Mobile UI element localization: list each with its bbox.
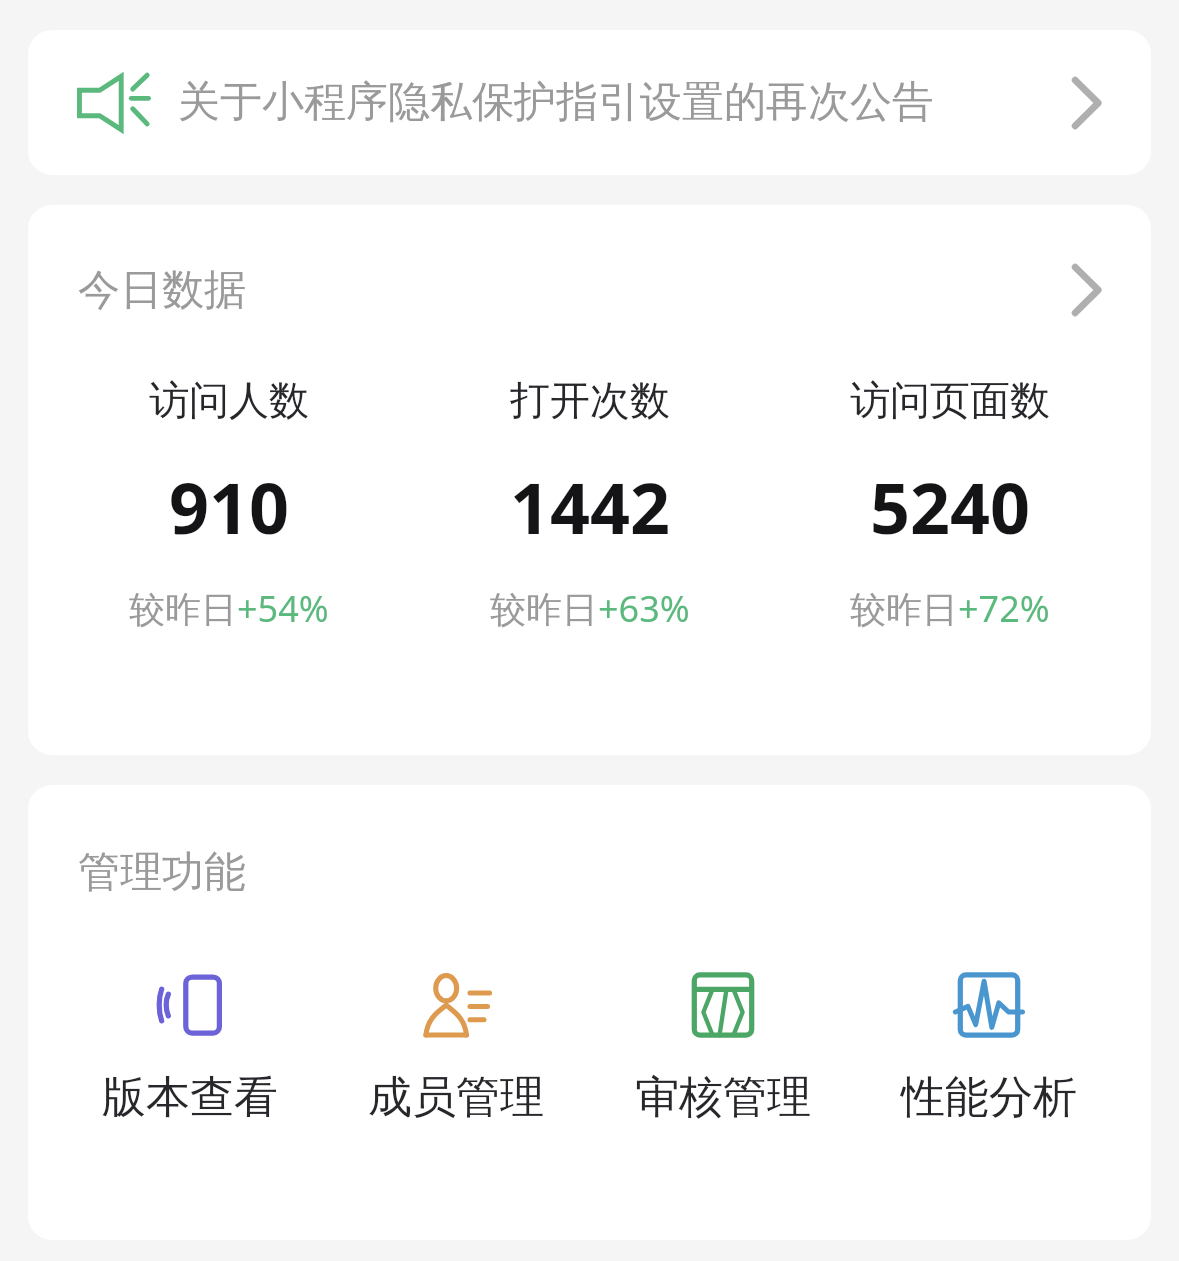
other: 审核管理 bbox=[688, 970, 758, 1040]
button[interactable]: 访问页面数 bbox=[790, 375, 1110, 633]
staticText: 今日数据 bbox=[78, 264, 246, 317]
button[interactable]: 成员管理 bbox=[331, 960, 581, 1131]
other: 成员管理 bbox=[421, 970, 491, 1040]
staticText: 较昨日+72% bbox=[850, 584, 1050, 633]
staticText: 成员管理 bbox=[368, 1070, 544, 1125]
staticText: 1442 bbox=[510, 459, 671, 554]
staticText: 打开次数 bbox=[510, 375, 670, 425]
staticText: 审核管理 bbox=[635, 1070, 811, 1125]
button[interactable]: 版本查看 bbox=[65, 960, 315, 1131]
staticText: 较昨日+54% bbox=[129, 584, 329, 633]
staticText: 910 bbox=[169, 459, 290, 554]
staticText: 较昨日+63% bbox=[490, 584, 690, 633]
button[interactable]: 性能分析 bbox=[864, 960, 1114, 1131]
staticText: 5240 bbox=[870, 459, 1031, 554]
other: 版本查看 bbox=[155, 970, 225, 1040]
staticText: 管理功能 bbox=[78, 846, 246, 899]
other: 性能分析 bbox=[954, 970, 1024, 1040]
button[interactable]: 访问人数 bbox=[69, 375, 389, 633]
staticText: 版本查看 bbox=[102, 1070, 278, 1125]
staticText: 访问页面数 bbox=[850, 375, 1050, 425]
staticText: 关于小程序隐私保护指引设置的再次公告 bbox=[178, 76, 934, 129]
staticText: 性能分析 bbox=[901, 1070, 1077, 1125]
button[interactable]: 关于小程序隐私保护指引设置的再次公告 bbox=[28, 30, 1151, 175]
button[interactable]: 今日数据 bbox=[28, 205, 1151, 375]
staticText: 访问人数 bbox=[149, 375, 309, 425]
button[interactable]: 审核管理 bbox=[598, 960, 848, 1131]
button[interactable]: 打开次数 bbox=[430, 375, 750, 633]
